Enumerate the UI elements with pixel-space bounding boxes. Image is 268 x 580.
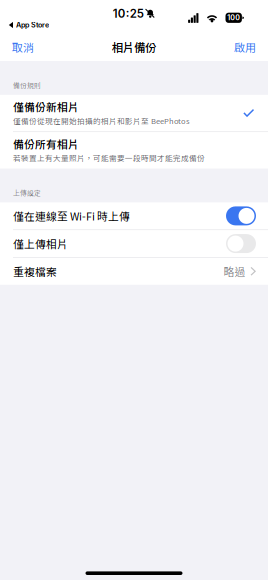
staticText: 重複檔案 — [13, 264, 57, 279]
staticText: 上傳設定 — [13, 187, 41, 197]
staticText: 100 — [227, 14, 240, 22]
staticText: 10:25 — [113, 7, 144, 20]
staticText: 取消 — [12, 39, 34, 55]
staticText: 僅備份新相片 — [13, 99, 79, 114]
button[interactable]: 僅備份新相片 — [0, 95, 268, 131]
staticText: 略過 — [224, 264, 246, 279]
staticText: 相片備份 — [112, 39, 156, 55]
staticText: 僅在連線至 Wi-Fi 時上傳 — [13, 208, 130, 224]
button[interactable]: 取消 — [0, 36, 46, 58]
staticText: App Store — [16, 21, 49, 29]
button[interactable]: 啟用 — [222, 36, 268, 58]
button[interactable]: 僅上傳相片 — [0, 230, 268, 257]
staticText: 備份所有相片 — [13, 136, 79, 151]
staticText: 啟用 — [234, 39, 256, 55]
staticText: 若裝置上有大量照片，可能需要一段時間才能完成備份 — [13, 152, 205, 163]
staticText: 僅上傳相片 — [13, 236, 68, 251]
button[interactable]: 重複檔案 — [0, 258, 268, 285]
button[interactable]: 僅在連線至 Wi-Fi 時上傳 — [0, 202, 268, 229]
staticText: 僅備份從現在開始拍攝的相片和影片至 BeePhotos — [13, 115, 190, 126]
button[interactable]: 備份所有相片 — [0, 132, 268, 168]
staticText: 備份規則 — [13, 80, 41, 90]
